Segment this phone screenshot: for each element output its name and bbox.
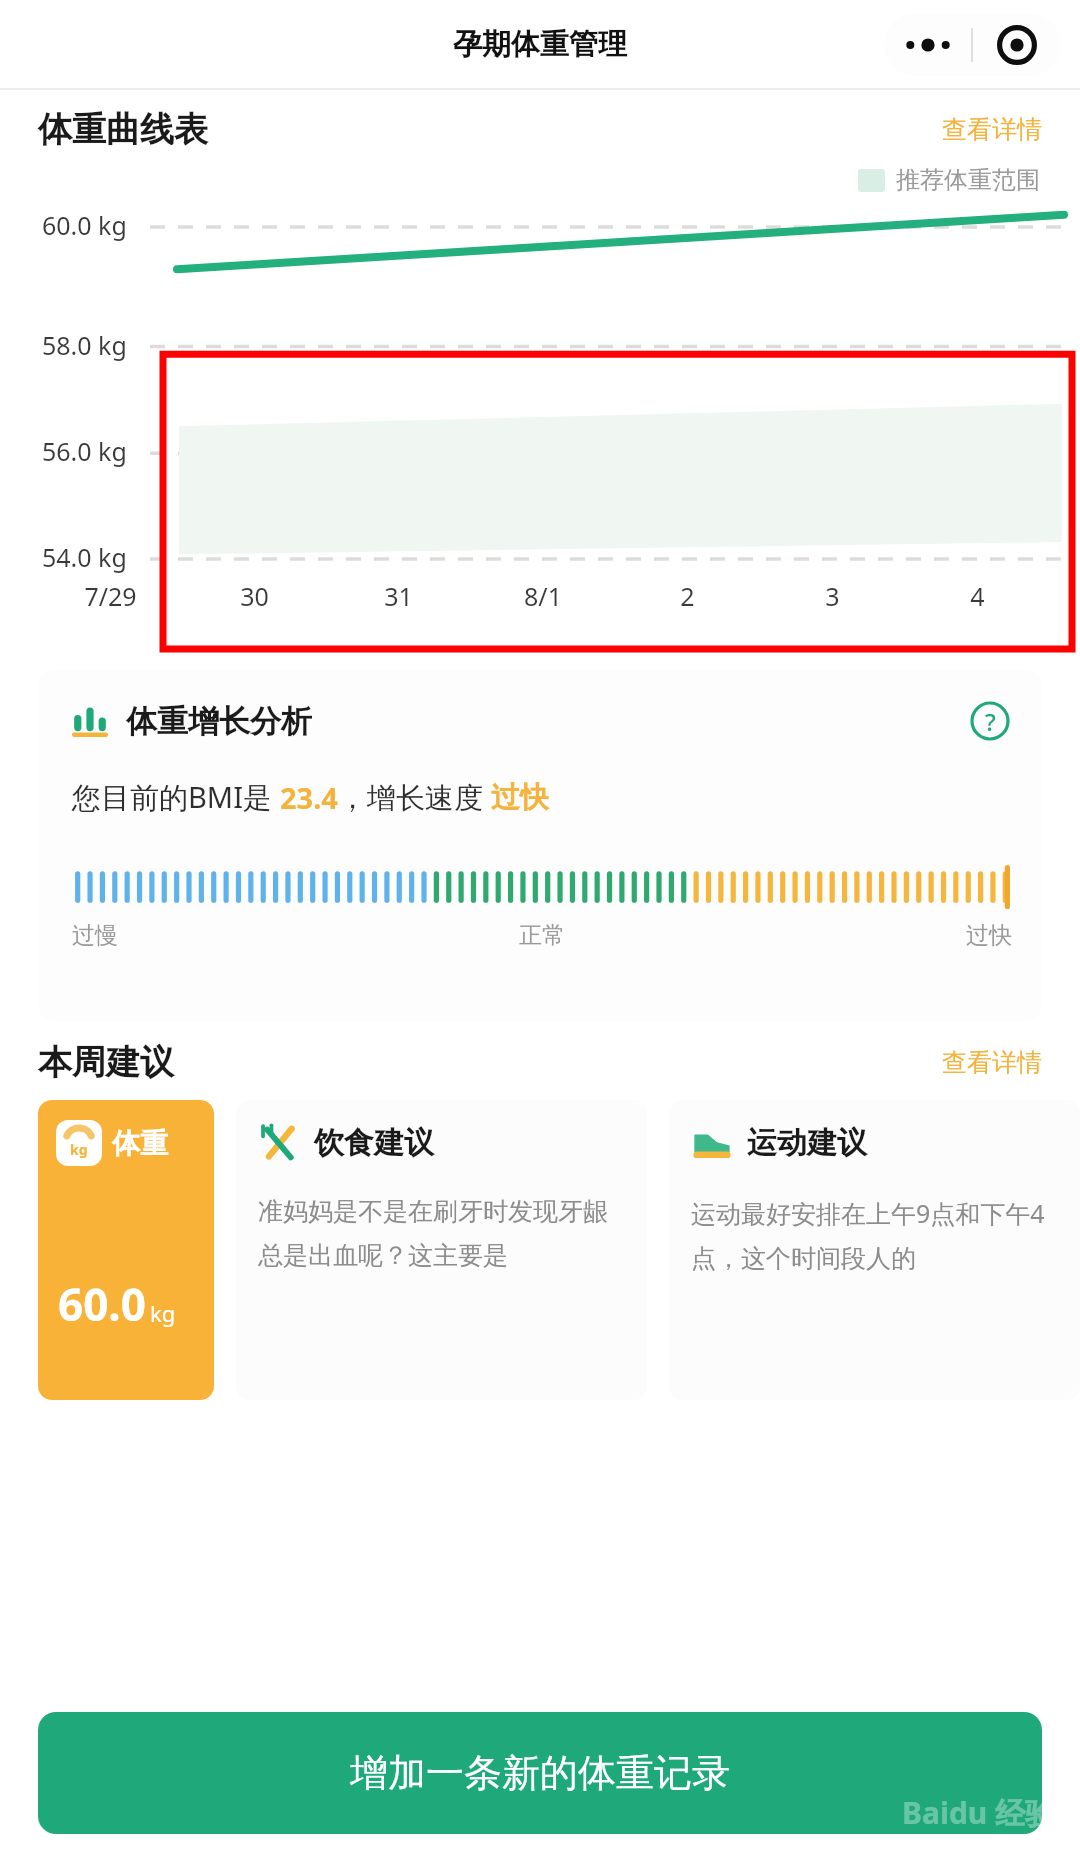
staticText: 31 [384, 579, 413, 613]
button[interactable]: More options [884, 13, 971, 76]
staticText: 7/29 [84, 579, 137, 613]
staticText: 体重曲线表 [38, 108, 208, 151]
staticText: 查看详情 [942, 1047, 1042, 1078]
staticText: 过快 [966, 921, 1012, 950]
staticText: 58.0 kg [42, 328, 127, 362]
staticText: 过快 [491, 779, 549, 816]
staticText: 查看详情 [942, 114, 1042, 145]
staticText: 30 [240, 579, 269, 613]
staticText: Baidu 经验 [902, 1792, 1056, 1833]
staticText: ，增长速度 [338, 777, 491, 817]
staticText: 孕期体重管理 [453, 26, 627, 63]
staticText: 体重增长分析 [126, 702, 312, 741]
staticText: 60.0 [58, 1274, 146, 1334]
button[interactable]: 体重增长分析 [38, 669, 1042, 1021]
button[interactable]: 查看详情 [936, 1041, 1048, 1084]
staticText: 3 [825, 579, 840, 613]
staticText: 8/1 [524, 579, 562, 613]
staticText: 您目前的BMI是 [72, 777, 280, 817]
staticText: 准妈妈是不是在刷牙时发现牙龈总是出血呢？这主要是 [258, 1196, 629, 1271]
staticText: kg [150, 1298, 176, 1328]
staticText: 正常 [519, 921, 565, 950]
staticText: ? [985, 705, 996, 738]
staticText: 过慢 [72, 921, 118, 950]
staticText: 运动最好安排在上午9点和下午4点，这个时间段人的 [691, 1196, 1062, 1274]
staticText: 推荐体重范围 [896, 165, 1040, 195]
staticText: 2 [680, 579, 695, 613]
staticText: 增加一条新的体重记录 [350, 1749, 730, 1797]
staticText: kg [70, 1140, 88, 1159]
staticText: 本周建议 [38, 1041, 174, 1084]
staticText: 56.0 kg [42, 434, 127, 468]
button[interactable]: 查看详情 [936, 108, 1048, 151]
staticText: 60.0 kg [42, 208, 127, 242]
button[interactable]: Close mini program [973, 13, 1061, 76]
staticText: 54.0 kg [42, 540, 127, 574]
staticText: 饮食建议 [314, 1124, 434, 1162]
staticText: 23.4 [280, 778, 338, 817]
staticText: 运动建议 [747, 1124, 867, 1162]
button[interactable]: 运动建议 [669, 1100, 1080, 1400]
button[interactable]: 饮食建议 [236, 1100, 647, 1400]
button[interactable]: kg [38, 1100, 214, 1400]
staticText: jingyan.baidu.com [908, 1833, 1056, 1856]
button[interactable]: 增加一条新的体重记录 [38, 1712, 1042, 1834]
staticText: 4 [970, 579, 985, 613]
staticText: 体重 [112, 1126, 168, 1161]
button[interactable]: Help [968, 699, 1012, 743]
